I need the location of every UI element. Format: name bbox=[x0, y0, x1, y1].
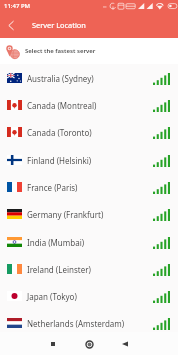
staticText: Server Location bbox=[32, 20, 86, 30]
staticText: Ireland (Leinster) bbox=[27, 264, 91, 275]
button[interactable]: Australia (Sydney) bbox=[0, 64, 178, 92]
staticText: Australia (Sydney) bbox=[27, 73, 94, 84]
button[interactable]: Recents bbox=[42, 333, 64, 355]
staticText: India (Mumbai) bbox=[27, 237, 85, 248]
button[interactable]: Canada (Toronto) bbox=[0, 118, 178, 146]
button[interactable]: Select the fastest server bbox=[0, 38, 178, 64]
staticText: Netherlands (Amsterdam) bbox=[27, 318, 125, 329]
button[interactable]: Netherlands (Amsterdam) bbox=[0, 309, 178, 332]
staticText: Japan (Tokyo) bbox=[27, 291, 77, 302]
staticText: Finland (Helsinki) bbox=[27, 155, 92, 166]
staticText: Select the fastest server bbox=[25, 47, 96, 55]
staticText: Canada (Toronto) bbox=[27, 127, 92, 138]
button[interactable]: Germany (Frankfurt) bbox=[0, 200, 178, 228]
button[interactable]: Back bbox=[0, 14, 22, 36]
button[interactable]: France (Paris) bbox=[0, 173, 178, 201]
button[interactable]: Japan (Tokyo) bbox=[0, 282, 178, 310]
button[interactable]: Back bbox=[114, 333, 136, 355]
staticText: 11:47 PM bbox=[4, 2, 31, 10]
staticText: France (Paris) bbox=[27, 182, 78, 193]
staticText: Germany (Frankfurt) bbox=[27, 209, 104, 220]
button[interactable]: India (Mumbai) bbox=[0, 228, 178, 256]
button[interactable]: Canada (Montreal) bbox=[0, 91, 178, 119]
button[interactable]: Home bbox=[78, 333, 100, 355]
button[interactable]: Finland (Helsinki) bbox=[0, 146, 178, 174]
staticText: Canada (Montreal) bbox=[27, 100, 97, 111]
button[interactable]: Ireland (Leinster) bbox=[0, 255, 178, 283]
